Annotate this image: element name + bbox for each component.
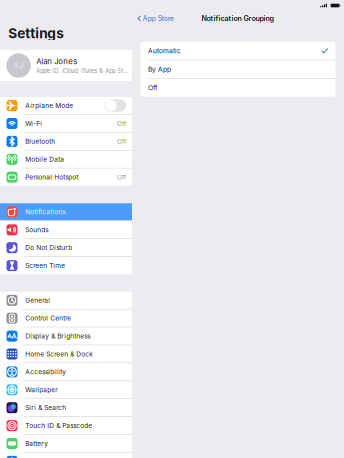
staticText: Off	[148, 84, 157, 92]
staticText: Wi-Fi	[25, 119, 42, 127]
button[interactable]: App Store	[132, 12, 174, 24]
staticText: Off	[117, 137, 126, 145]
button[interactable]: Accessibility	[0, 363, 132, 380]
staticText: Display & Brightness	[25, 332, 90, 340]
button[interactable]: Bluetooth	[0, 133, 132, 150]
button[interactable]: Control Centre	[0, 310, 132, 327]
button[interactable]: Touch ID & Passcode	[0, 417, 132, 434]
button[interactable]: AJ	[0, 50, 132, 81]
button[interactable]: Off	[140, 79, 335, 97]
staticText: Accessibility	[25, 368, 66, 376]
button[interactable]: Airplane Mode	[0, 97, 132, 114]
staticText: App Store	[143, 14, 174, 23]
staticText: Notification Grouping	[201, 14, 274, 23]
staticText: Off	[117, 173, 126, 181]
button[interactable]: By App	[140, 60, 335, 78]
button[interactable]: Notifications	[0, 203, 132, 220]
staticText: AJ	[13, 61, 24, 70]
staticText: Personal Hotspot	[25, 173, 78, 181]
staticText: Touch ID & Passcode	[25, 422, 92, 429]
staticText: Alan Jones	[36, 57, 77, 66]
button[interactable]: Sounds	[0, 221, 132, 238]
button[interactable]: Home Screen & Dock	[0, 345, 132, 363]
staticText: Off	[117, 119, 126, 127]
button[interactable]: Privacy	[0, 453, 132, 458]
staticText: Settings	[8, 25, 64, 41]
button[interactable]: Siri & Search	[0, 399, 132, 416]
staticText: General	[25, 296, 50, 304]
staticText: Airplane Mode	[25, 102, 73, 109]
staticText: Sounds	[25, 226, 48, 234]
button[interactable]: Battery	[0, 435, 132, 452]
staticText: Siri & Search	[25, 404, 66, 412]
staticText: Notifications	[25, 208, 65, 216]
staticText: Apple ID, iCloud, iTunes & App St...	[36, 67, 129, 74]
staticText: Automatic	[148, 47, 181, 55]
button[interactable]: Automatic	[140, 42, 335, 60]
button[interactable]: Do Not Disturb	[0, 239, 132, 256]
staticText: Home Screen & Dock	[25, 350, 93, 358]
button[interactable]: General	[0, 292, 132, 309]
staticText: Battery	[25, 439, 48, 447]
button[interactable]: Wallpaper	[0, 381, 132, 398]
staticText: Wallpaper	[25, 386, 57, 394]
staticText: Screen Time	[25, 262, 65, 269]
staticText: Do Not Disturb	[25, 244, 72, 252]
button[interactable]: Screen Time	[0, 257, 132, 274]
button[interactable]: Display & Brightness	[0, 327, 132, 345]
staticText: Mobile Data	[25, 155, 64, 163]
staticText: Bluetooth	[25, 137, 55, 145]
staticText: By App	[148, 65, 171, 73]
button[interactable]: Mobile Data	[0, 151, 132, 168]
staticText: Control Centre	[25, 314, 71, 322]
button[interactable]: Wi-Fi	[0, 115, 132, 132]
button[interactable]: Personal Hotspot	[0, 169, 132, 186]
